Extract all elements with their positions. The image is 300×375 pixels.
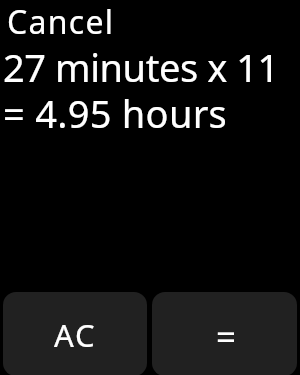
staticText: = 4.95 hours <box>3 87 228 139</box>
staticText: = <box>216 313 237 361</box>
staticText: Cancel <box>7 0 115 44</box>
staticText: AC <box>54 314 97 356</box>
staticText: 27 minutes x 11 <box>3 41 279 93</box>
button[interactable]: Equals <box>152 292 297 375</box>
button[interactable]: Cancel <box>1 0 125 46</box>
button[interactable]: AC <box>3 292 147 375</box>
